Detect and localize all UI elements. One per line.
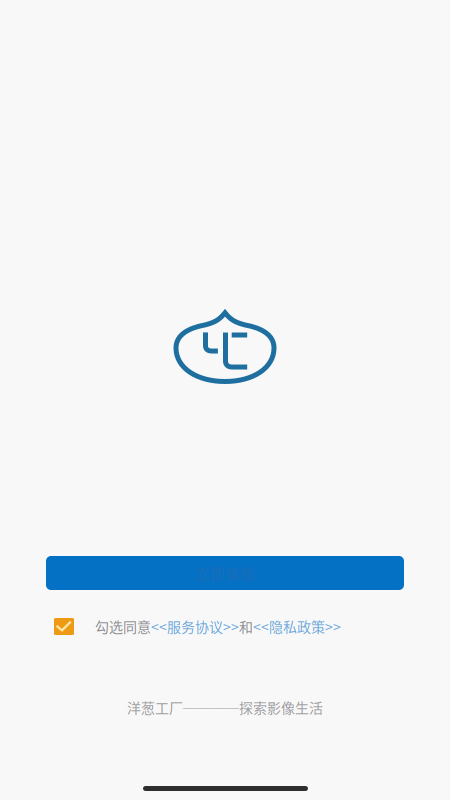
staticText: 和 bbox=[239, 616, 253, 636]
staticText: 立即体验 bbox=[195, 562, 255, 584]
button[interactable]: 立即体验 bbox=[46, 556, 404, 590]
staticText: <<隐私政策>> bbox=[253, 616, 341, 636]
staticText: 勾选同意 bbox=[95, 616, 151, 636]
staticText: <<服务协议>> bbox=[151, 616, 239, 636]
button[interactable]: <<隐私政策>> bbox=[253, 616, 341, 636]
button[interactable]: Agree to the service terms bbox=[54, 618, 74, 635]
staticText: 洋葱工厂────探索影像生活 bbox=[127, 697, 323, 717]
button[interactable]: <<服务协议>> bbox=[151, 616, 239, 636]
